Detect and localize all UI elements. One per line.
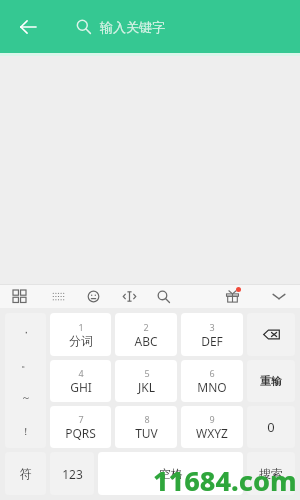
staticText: 3 xyxy=(209,321,215,333)
button[interactable]: 1 xyxy=(50,313,111,356)
button[interactable]: 输入关键字 xyxy=(76,0,165,53)
button[interactable]: 搜索 xyxy=(247,452,295,495)
staticText: 分词 xyxy=(69,333,93,348)
staticText: 重输 xyxy=(260,374,282,388)
staticText: 4 xyxy=(78,367,84,379)
staticText: 搜索 xyxy=(259,466,283,481)
button[interactable]: ， xyxy=(5,313,46,448)
staticText: ， xyxy=(21,323,31,336)
staticText: JKL xyxy=(138,379,155,395)
staticText: 6 xyxy=(209,367,215,379)
button[interactable]: Move cursor xyxy=(119,286,139,306)
button[interactable]: 6 xyxy=(181,360,243,402)
button[interactable]: 3 xyxy=(181,313,243,356)
button[interactable]: Layout xyxy=(9,286,29,306)
staticText: 空格 xyxy=(159,466,183,481)
button[interactable]: 7 xyxy=(50,406,111,448)
button[interactable]: Gift xyxy=(223,287,241,305)
button[interactable]: 4 xyxy=(50,360,111,402)
staticText: 符 xyxy=(20,466,32,481)
staticText: TUV xyxy=(135,425,158,441)
staticText: 输入关键字 xyxy=(100,19,165,35)
staticText: WXYZ xyxy=(196,425,228,441)
staticText: 7 xyxy=(78,413,84,425)
button[interactable]: 9 xyxy=(181,406,243,448)
staticText: GHI xyxy=(70,379,92,395)
staticText: 8 xyxy=(144,413,150,425)
button[interactable]: Search xyxy=(153,286,173,306)
staticText: 9 xyxy=(209,413,215,425)
staticText: 123 xyxy=(62,466,83,482)
staticText: ～ xyxy=(21,391,31,404)
button[interactable]: Backspace xyxy=(247,313,295,356)
button[interactable]: 8 xyxy=(115,406,177,448)
button[interactable]: Back xyxy=(8,7,48,47)
staticText: 。 xyxy=(21,357,31,370)
button[interactable]: 空格 xyxy=(98,452,243,495)
staticText: 2 xyxy=(143,321,149,333)
staticText: DEF xyxy=(201,333,223,349)
button[interactable]: Emoji xyxy=(83,286,103,306)
button[interactable]: 2 xyxy=(115,313,177,356)
staticText: MNO xyxy=(197,379,227,395)
staticText: 0 xyxy=(267,418,275,436)
staticText: ！ xyxy=(21,425,31,438)
button[interactable]: Keyboard xyxy=(48,286,68,306)
staticText: 1 xyxy=(78,321,84,333)
staticText: PQRS xyxy=(65,425,96,441)
staticText: 11684.com xyxy=(153,462,297,499)
button[interactable]: 0 xyxy=(247,406,295,448)
button[interactable]: Hide keyboard xyxy=(269,286,289,306)
button[interactable]: 123 xyxy=(50,452,94,495)
staticText: 5 xyxy=(144,367,150,379)
button[interactable]: 符 xyxy=(5,452,46,495)
staticText: ABC xyxy=(134,333,158,349)
button[interactable]: 重输 xyxy=(247,360,295,402)
button[interactable]: 5 xyxy=(115,360,177,402)
